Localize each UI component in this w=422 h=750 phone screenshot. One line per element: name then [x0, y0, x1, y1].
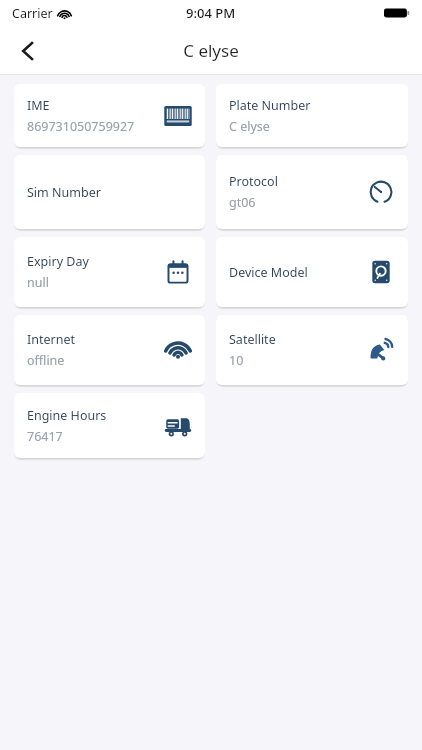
button[interactable]: Sim Number	[14, 155, 205, 229]
staticText: offline	[27, 352, 65, 369]
staticText: null	[27, 274, 49, 291]
button[interactable]: Internet	[14, 315, 205, 385]
staticText: 9:04 PM	[186, 4, 236, 22]
staticText: 10	[229, 352, 244, 369]
staticText: Protocol	[229, 173, 278, 190]
staticText: Plate Number	[229, 97, 311, 114]
staticText: IME	[27, 97, 50, 114]
staticText: Satellite	[229, 331, 276, 348]
staticText: gt06	[229, 194, 256, 211]
button[interactable]: IME	[14, 84, 205, 147]
button[interactable]: Plate Number	[216, 84, 408, 147]
staticText: 869731050759927	[27, 118, 135, 135]
button[interactable]: Engine Hours	[14, 393, 205, 458]
staticText: Engine Hours	[27, 407, 107, 424]
button[interactable]: Satellite	[216, 315, 408, 385]
staticText: Carrier	[12, 5, 53, 22]
button[interactable]: Protocol	[216, 155, 408, 229]
staticText: C elyse	[229, 118, 270, 135]
staticText: Device Model	[229, 264, 308, 281]
button[interactable]: Back	[6, 29, 50, 73]
button[interactable]: Device Model	[216, 237, 408, 307]
staticText: C elyse	[183, 39, 239, 62]
staticText: Internet	[27, 331, 75, 348]
staticText: Sim Number	[27, 184, 101, 201]
button[interactable]: Expiry Day	[14, 237, 205, 307]
staticText: 76417	[27, 428, 63, 445]
staticText: Expiry Day	[27, 253, 89, 270]
